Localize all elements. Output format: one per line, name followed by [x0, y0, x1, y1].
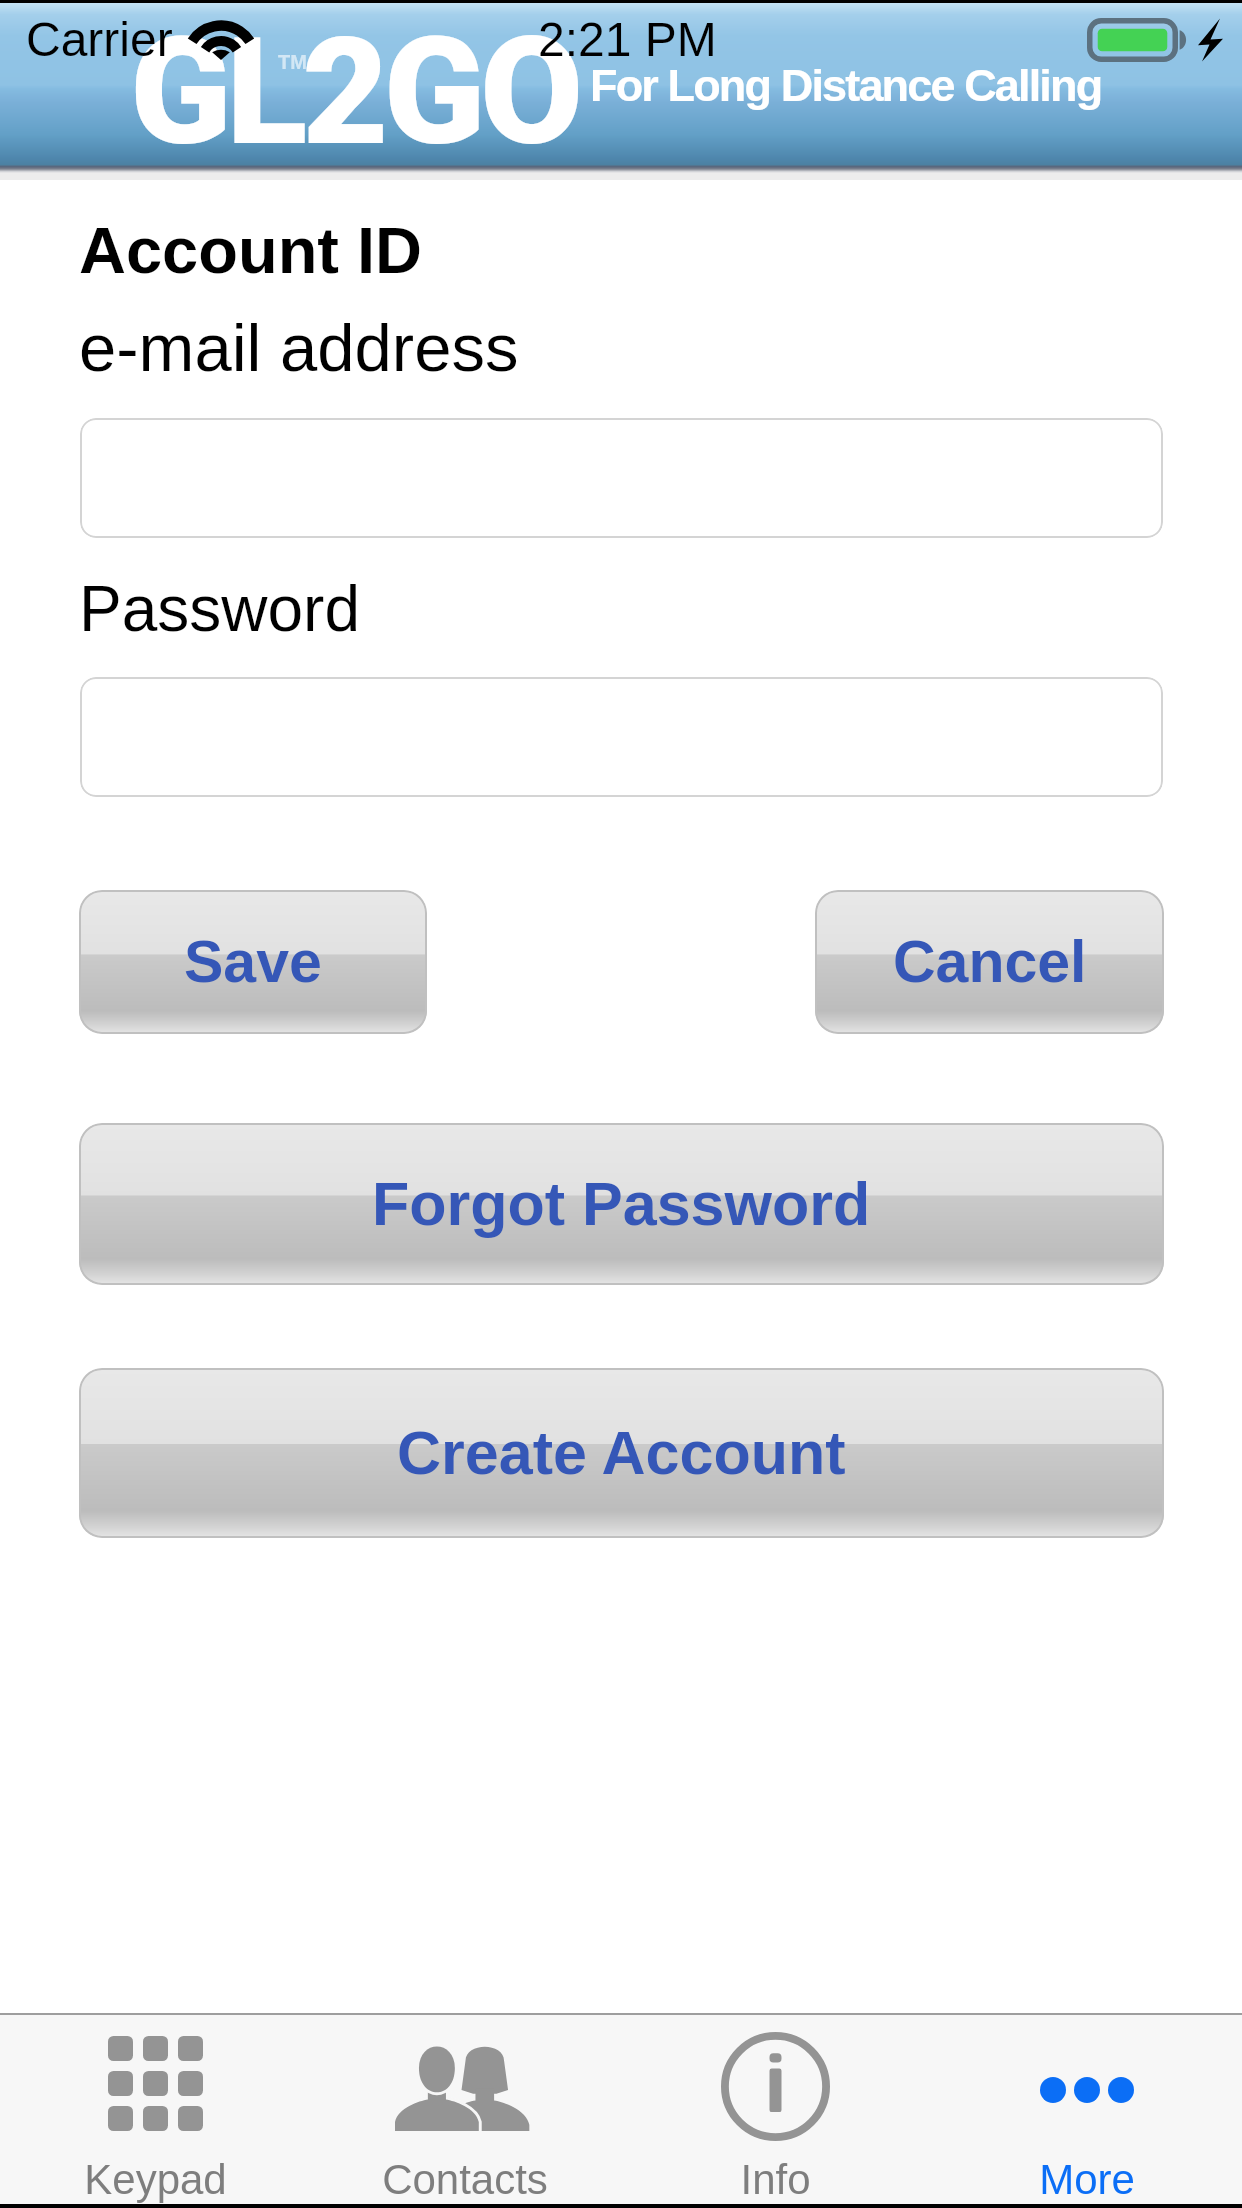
button[interactable]: Contacts [310, 2013, 620, 2204]
button[interactable]: More [931, 2013, 1242, 2204]
staticText: Create Account [397, 1419, 846, 1487]
staticText: Keypad [84, 2156, 227, 2203]
other: Battery charging [1087, 18, 1223, 62]
staticText: TM [278, 51, 307, 73]
button[interactable]: Keypad [0, 2013, 310, 2204]
staticText: More [1039, 2156, 1135, 2203]
staticText: Account ID [79, 214, 423, 287]
staticText: 2:21 PM [538, 13, 717, 67]
staticText: Contacts [382, 2156, 548, 2203]
button[interactable]: Info [620, 2013, 931, 2204]
staticText: Save [184, 929, 322, 995]
other: Wi-Fi [193, 20, 249, 60]
staticText: Carrier [26, 13, 173, 67]
staticText: Forgot Password [372, 1170, 871, 1238]
staticText: e-mail address [79, 310, 519, 385]
staticText: Cancel [893, 929, 1087, 995]
button[interactable]: Forgot Password [79, 1123, 1164, 1285]
staticText: For Long Distance Calling [590, 60, 1102, 110]
button[interactable]: Create Account [79, 1368, 1164, 1538]
button[interactable] [80, 418, 1163, 538]
staticText: Password [79, 573, 360, 645]
button[interactable]: Save [79, 890, 427, 1034]
button[interactable]: Cancel [815, 890, 1164, 1034]
staticText: Info [740, 2156, 811, 2203]
button[interactable] [80, 677, 1163, 797]
staticText: GL2GO [130, 5, 579, 180]
